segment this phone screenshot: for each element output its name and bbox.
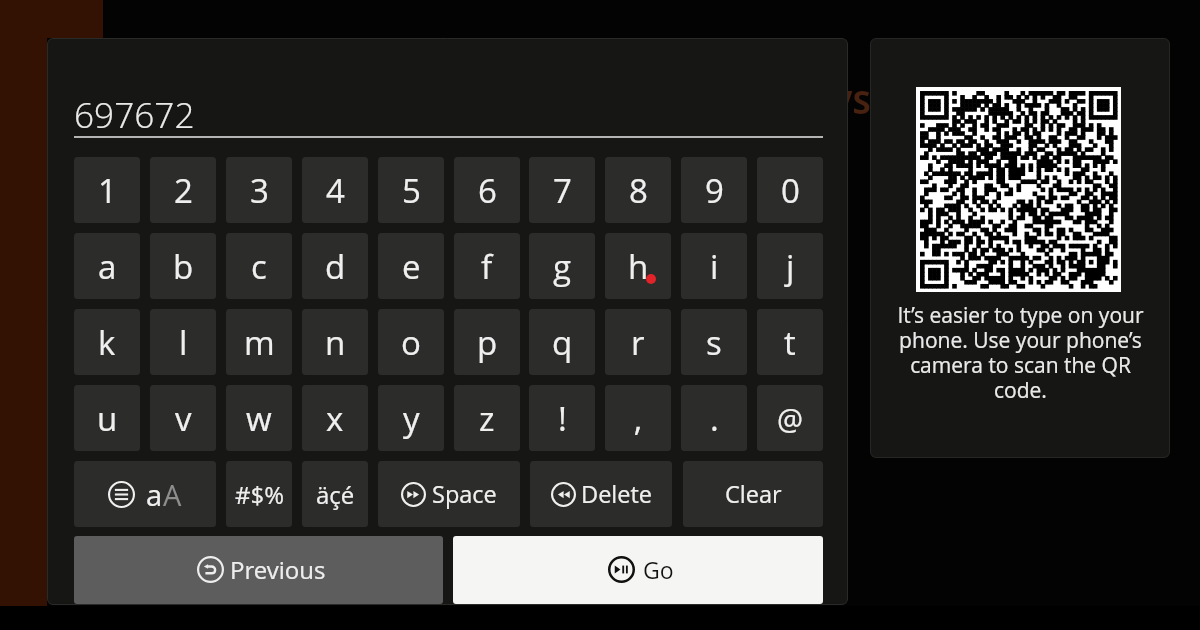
button[interactable]: i [681,233,747,299]
staticText: b [173,244,194,289]
staticText: i [710,244,719,289]
button[interactable]: , [605,385,671,451]
staticText: #$% [235,478,284,511]
button[interactable]: h [605,233,671,299]
staticText: k [98,320,116,365]
button[interactable]: t [757,309,823,375]
button[interactable]: b [150,233,216,299]
button[interactable]: z [454,385,520,451]
staticText: y [403,396,420,441]
button[interactable]: 1 [74,157,140,223]
staticText: It’s easier to type on your phone. Use y… [889,301,1152,404]
staticText: A [163,475,182,514]
staticText: p [477,320,498,365]
staticText: Previous [230,553,326,586]
button[interactable]: ! [529,385,595,451]
button[interactable]: äçé [302,461,368,527]
staticText: 5 [402,168,421,213]
staticText: 3 [250,168,269,213]
staticText: u [97,396,118,441]
button[interactable]: d [302,233,368,299]
button[interactable]: v [150,385,216,451]
button[interactable]: @ [757,385,823,451]
staticText: r [631,320,645,365]
button[interactable]: x [302,385,368,451]
button[interactable]: g [529,233,595,299]
staticText: Space [432,478,497,510]
staticText: x [326,396,344,441]
staticText: e [402,244,421,289]
staticText: f [481,244,493,289]
staticText: 4 [326,168,345,213]
staticText: l [179,320,188,365]
staticText: o [401,320,421,365]
staticText: , [634,396,643,441]
button[interactable]: Delete [530,461,672,527]
button[interactable]: . [681,385,747,451]
button[interactable]: y [378,385,444,451]
staticText: äçé [316,478,355,511]
button[interactable]: 9 [681,157,747,223]
button[interactable]: p [454,309,520,375]
button[interactable]: 3 [226,157,292,223]
button[interactable]: k [74,309,140,375]
staticText: z [479,396,495,441]
button[interactable]: e [378,233,444,299]
button[interactable]: s [681,309,747,375]
staticText: Go [643,554,674,585]
staticText: a [146,475,163,514]
staticText: 2 [174,168,193,213]
staticText: d [325,244,346,289]
button[interactable]: c [226,233,292,299]
staticText: q [552,320,573,365]
staticText: a [98,244,117,289]
staticText: 6 [478,168,497,213]
button[interactable]: a [74,233,140,299]
staticText: Delete [581,478,652,510]
staticText: 1 [98,168,117,213]
button[interactable]: f [454,233,520,299]
button[interactable]: 2 [150,157,216,223]
staticText: 7 [553,168,572,213]
button[interactable]: j [757,233,823,299]
staticText: w [246,396,272,441]
staticText: h [628,244,649,289]
button[interactable]: Switch keyboard, change case [74,461,216,527]
button[interactable]: Go [453,536,823,604]
staticText: 8 [629,168,648,213]
button[interactable]: q [529,309,595,375]
staticText: c [251,244,267,289]
staticText: m [244,320,275,365]
button[interactable]: #$% [226,461,292,527]
button[interactable]: 0 [757,157,823,223]
button[interactable]: Previous [74,536,443,604]
staticText: . [710,396,719,441]
staticText: 9 [705,168,724,213]
staticText: v [175,396,192,441]
staticText: s [706,320,722,365]
staticText: n [325,320,346,365]
button[interactable]: o [378,309,444,375]
staticText: 697672 [74,90,195,138]
staticText: @ [777,399,804,438]
staticText: t [784,320,796,365]
staticText: j [786,244,795,289]
button[interactable]: l [150,309,216,375]
button[interactable]: w [226,385,292,451]
staticText: VS [831,79,871,124]
button[interactable]: r [605,309,671,375]
button[interactable]: m [226,309,292,375]
button[interactable]: Space [378,461,520,527]
button[interactable]: u [74,385,140,451]
button[interactable]: 4 [302,157,368,223]
button[interactable]: 6 [454,157,520,223]
button[interactable]: Clear [683,461,823,527]
staticText: 0 [781,168,800,213]
staticText: g [553,244,572,289]
button[interactable]: 8 [605,157,671,223]
staticText: Clear [725,478,782,510]
button[interactable]: 5 [378,157,444,223]
staticText: ! [558,396,567,441]
button[interactable]: n [302,309,368,375]
button[interactable]: 7 [529,157,595,223]
